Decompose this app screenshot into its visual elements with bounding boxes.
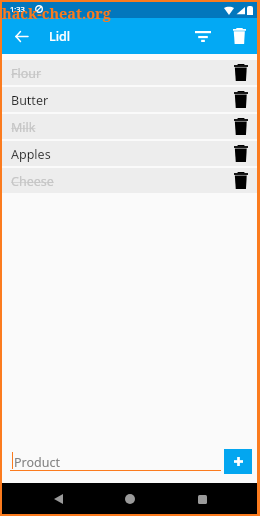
button[interactable]: Apples	[2, 141, 257, 166]
button[interactable]: Delete Butter	[227, 87, 254, 112]
button[interactable]: Butter	[2, 87, 257, 112]
staticText: 1:33	[10, 4, 25, 14]
staticText: Lidl	[49, 28, 71, 45]
button[interactable]: Cheese	[2, 168, 257, 193]
button[interactable]: Back	[7, 18, 35, 54]
staticText: Cheese	[11, 173, 54, 190]
button[interactable]: Flour	[2, 60, 257, 85]
button[interactable]: Back	[44, 485, 72, 513]
staticText: Product	[14, 454, 60, 471]
staticText: hack-cheat.org	[2, 3, 111, 23]
button[interactable]: Delete Milk	[227, 114, 254, 139]
staticText: Apples	[11, 146, 51, 163]
button[interactable]: Sort	[188, 18, 218, 54]
staticText: Butter	[11, 92, 49, 109]
staticText: Milk	[11, 119, 36, 136]
button[interactable]: Delete Flour	[227, 60, 254, 85]
button[interactable]: Delete Apples	[227, 141, 254, 166]
button[interactable]: Delete Cheese	[227, 168, 254, 193]
button[interactable]: Add product	[224, 449, 252, 474]
button[interactable]: Delete all items	[224, 18, 254, 54]
staticText: Flour	[11, 65, 42, 82]
button[interactable]: Home	[116, 485, 144, 513]
button[interactable]: Recent apps	[188, 485, 216, 513]
button[interactable]: Milk	[2, 114, 257, 139]
